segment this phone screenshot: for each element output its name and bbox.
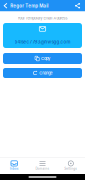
button[interactable]: Change xyxy=(0,68,85,78)
staticText: Regor Temp Mail xyxy=(10,3,48,8)
button[interactable]: Settings xyxy=(57,159,85,172)
button[interactable]: Copy xyxy=(0,53,85,64)
staticText: Change xyxy=(39,71,52,75)
button[interactable]: Back xyxy=(0,0,10,11)
staticText: Your Temporary Email Address xyxy=(17,16,67,20)
button[interactable]: Share xyxy=(74,0,85,11)
staticText: b4lsec7793@hwsgg.com xyxy=(14,39,70,45)
button[interactable]: Domains xyxy=(28,159,57,172)
staticText: Inbox xyxy=(10,167,19,170)
staticText: Domains xyxy=(35,167,49,170)
button[interactable]: Inbox xyxy=(0,159,28,172)
staticText: Copy xyxy=(41,56,50,61)
staticText: Settings xyxy=(64,167,77,170)
